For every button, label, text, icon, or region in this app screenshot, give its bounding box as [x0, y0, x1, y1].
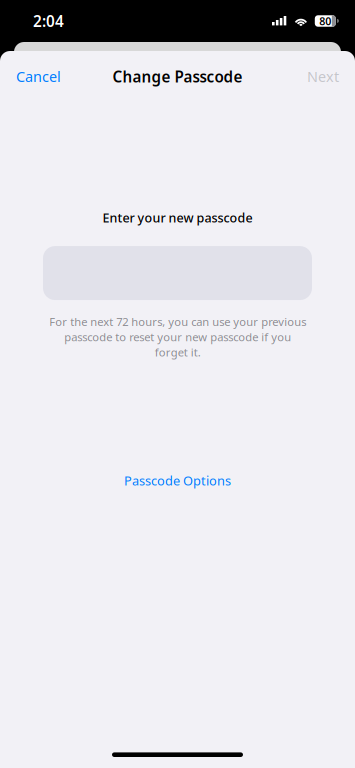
- button[interactable]: Passcode Options: [116, 464, 239, 497]
- staticText: 2:04: [33, 11, 64, 31]
- staticText: Enter your new passcode: [102, 209, 252, 226]
- staticText: For the next 72 hours, you can use your …: [49, 314, 306, 360]
- staticText: Passcode Options: [124, 472, 231, 489]
- staticText: 80: [319, 14, 331, 28]
- staticText: Cancel: [16, 67, 61, 86]
- staticText: Change Passcode: [112, 66, 242, 87]
- staticText: Next: [307, 67, 339, 86]
- button[interactable]: Cancel: [0, 54, 77, 98]
- button[interactable]: Next: [291, 54, 355, 98]
